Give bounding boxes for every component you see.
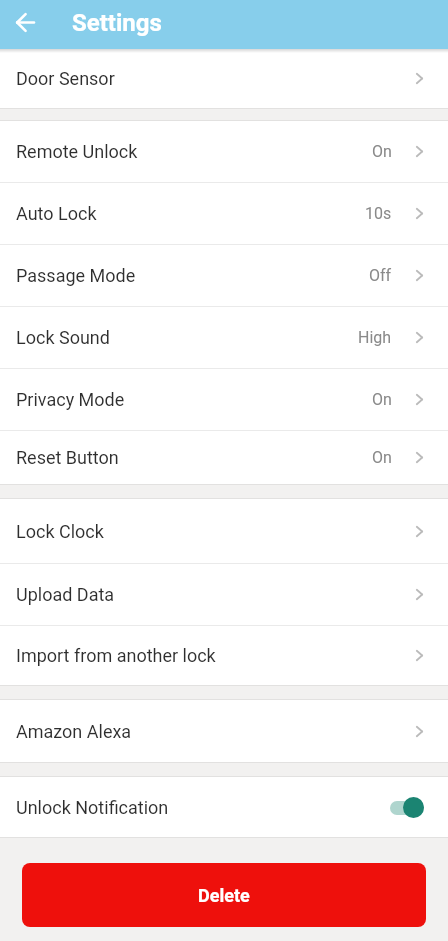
staticText: Upload Data: [16, 584, 115, 605]
staticText: High: [358, 328, 392, 347]
staticText: Off: [369, 266, 392, 285]
staticText: 10s: [365, 204, 392, 223]
staticText: Reset Button: [16, 447, 119, 468]
staticText: Settings: [72, 9, 162, 37]
staticText: On: [372, 390, 392, 409]
staticText: Passage Mode: [16, 265, 136, 286]
staticText: Lock Sound: [16, 327, 110, 348]
staticText: Door Sensor: [16, 68, 115, 89]
button[interactable]: Passage Mode: [0, 245, 448, 306]
staticText: Delete: [198, 885, 250, 906]
staticText: Import from another lock: [16, 645, 216, 666]
button[interactable]: Privacy Mode: [0, 369, 448, 430]
staticText: Unlock Notification: [16, 797, 169, 818]
button[interactable]: Auto Lock: [0, 183, 448, 244]
button[interactable]: [3, 0, 48, 45]
staticText: Remote Unlock: [16, 141, 138, 162]
button[interactable]: Import from another lock: [0, 626, 448, 685]
button[interactable]: Unlock Notification: [0, 777, 448, 837]
button[interactable]: Upload Data: [0, 564, 448, 625]
button[interactable]: Reset Button: [0, 431, 448, 484]
button[interactable]: [390, 797, 424, 818]
staticText: Lock Clock: [16, 521, 104, 542]
staticText: On: [372, 142, 392, 161]
button[interactable]: Lock Clock: [0, 499, 448, 563]
staticText: On: [372, 448, 392, 467]
button[interactable]: Remote Unlock: [0, 121, 448, 182]
button[interactable]: Lock Sound: [0, 307, 448, 368]
staticText: Amazon Alexa: [16, 721, 132, 742]
staticText: Auto Lock: [16, 203, 97, 224]
button[interactable]: Door Sensor: [0, 49, 448, 108]
button[interactable]: Delete: [22, 863, 426, 927]
staticText: Privacy Mode: [16, 389, 125, 410]
button[interactable]: Amazon Alexa: [0, 700, 448, 762]
